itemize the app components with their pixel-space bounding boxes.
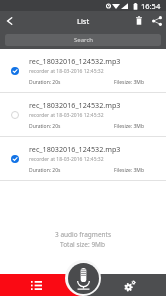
staticText: 3 audio fragments (55, 230, 112, 239)
staticText: Duration: 20s (29, 123, 61, 130)
staticText: rec_18032016_124532.mp3 (29, 100, 121, 110)
button[interactable]: rec_18032016_124532.mp3 (0, 93, 166, 137)
staticText: Filesize: 3Mb (114, 123, 144, 130)
button[interactable]: Share (148, 11, 166, 30)
staticText: rec_18032016_124532.mp3 (29, 144, 121, 154)
staticText: List (77, 16, 90, 26)
staticText: Filesize: 3Mb (114, 79, 144, 86)
button[interactable]: Back (0, 11, 19, 30)
staticText: Duration: 20s (29, 79, 61, 86)
staticText: Search (74, 36, 93, 44)
staticText: recorder at 18-03-2016 12:45:32 (29, 112, 104, 119)
staticText: 16:54 (141, 1, 161, 11)
button[interactable]: rec_18032016_124532.mp3 (0, 49, 166, 93)
button[interactable]: Recordings list (0, 274, 83, 296)
button[interactable]: Search (5, 34, 161, 46)
staticText: recorder at 18-03-2016 12:45:32 (29, 68, 104, 75)
staticText: recorder at 18-03-2016 12:45:32 (29, 156, 104, 163)
staticText: Duration: 20s (29, 167, 61, 174)
button[interactable]: Settings (83, 274, 166, 296)
staticText: Total size: 9Mb (60, 240, 106, 249)
staticText: rec_18032016_124532.mp3 (29, 56, 121, 66)
staticText: Filesize: 3Mb (114, 167, 144, 174)
button[interactable]: rec_18032016_124532.mp3 (0, 137, 166, 181)
button[interactable]: Delete (130, 11, 148, 30)
button[interactable]: Record (68, 263, 99, 294)
